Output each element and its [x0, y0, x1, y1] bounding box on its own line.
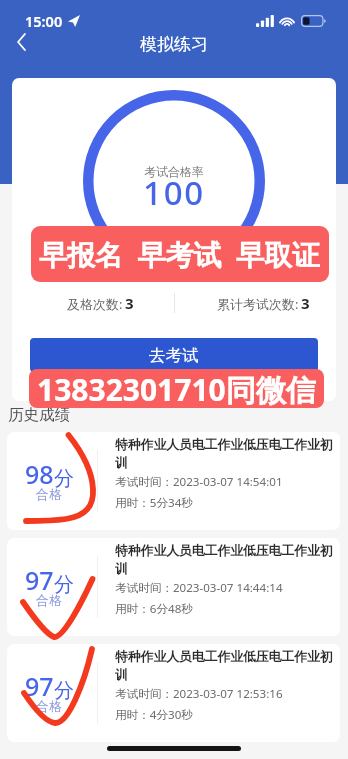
staticText: 3 — [125, 293, 134, 313]
button[interactable]: 97 — [7, 644, 340, 742]
button[interactable]: Back — [0, 24, 42, 60]
staticText: 97 — [25, 563, 54, 597]
staticText: 分 — [54, 572, 74, 597]
staticText: 及格次数: — [67, 295, 123, 313]
staticText: 考试时间：2023-03-07 14:54:01 — [115, 474, 283, 490]
staticText: 98 — [25, 457, 54, 491]
staticText: 3 — [301, 293, 310, 313]
staticText: 13832301710同微信 — [37, 369, 316, 408]
staticText: 合格 — [36, 698, 62, 714]
staticText: 用时：6分48秒 — [115, 601, 193, 617]
staticText: 考试时间：2023-03-07 12:53:16 — [115, 686, 283, 702]
staticText: 97 — [25, 669, 54, 703]
staticText: 模拟练习 — [140, 34, 208, 55]
staticText: 分 — [54, 678, 74, 703]
staticText: 特种作业人员电工作业低压电工作业初训 — [115, 543, 339, 577]
staticText: 分 — [54, 466, 74, 491]
button[interactable]: 98 — [7, 432, 340, 530]
staticText: 去考试 — [149, 345, 199, 366]
staticText: 累计考试次数: — [217, 295, 299, 313]
staticText: 100 — [143, 170, 206, 215]
staticText: 特种作业人员电工作业低压电工作业初训 — [115, 649, 339, 683]
button[interactable]: 去考试 — [30, 338, 318, 372]
staticText: 15:00 — [25, 11, 63, 31]
staticText: 历史成绩 — [8, 405, 70, 425]
staticText: 合格 — [36, 486, 62, 502]
staticText: 用时：5分34秒 — [115, 495, 193, 511]
staticText: 特种作业人员电工作业低压电工作业初训 — [115, 437, 339, 471]
staticText: 合格 — [36, 592, 62, 608]
staticText: 考试时间：2023-03-07 14:44:14 — [115, 580, 283, 596]
staticText: 用时：4分30秒 — [115, 707, 193, 723]
staticText: 早报名 早考试 早取证 — [39, 235, 321, 273]
staticText: 考试合格率 — [144, 164, 204, 179]
button[interactable]: 97 — [7, 538, 340, 636]
